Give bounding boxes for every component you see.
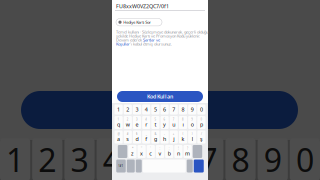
staticText: 9 [264, 138, 282, 180]
staticText: 6 [164, 118, 166, 121]
staticText: 3 [135, 106, 138, 113]
staticText: d [135, 135, 138, 143]
staticText: 0 [200, 118, 202, 121]
staticText: h [163, 135, 166, 143]
staticText: n [177, 150, 180, 157]
staticText: 1 [117, 106, 120, 113]
staticText: 8 [181, 106, 184, 113]
staticText: 8 [231, 138, 249, 180]
staticText: 6 [167, 138, 185, 180]
staticText: c [149, 150, 152, 157]
staticText: * [132, 147, 133, 150]
staticText: 1 [118, 118, 120, 121]
staticText: 3 [136, 118, 138, 121]
staticText: x [140, 150, 143, 157]
staticText: Devam ederek [116, 37, 143, 43]
staticText: - [164, 132, 165, 136]
staticText: 5 [135, 138, 153, 180]
staticText: 7 [173, 118, 175, 121]
staticText: b [168, 150, 171, 157]
staticText: f [145, 135, 147, 143]
staticText: 1 [6, 138, 24, 180]
staticText: o [191, 121, 194, 128]
staticText: m [185, 150, 190, 157]
staticText: ' [150, 147, 151, 150]
staticText: y [163, 121, 166, 128]
staticText: 9 [191, 118, 193, 121]
staticText: u [172, 121, 175, 128]
staticText: Şartlar ve [143, 37, 160, 43]
staticText: e [135, 121, 138, 128]
staticText: ı [182, 121, 183, 128]
staticText: a [117, 135, 120, 143]
staticText: 7 [172, 106, 175, 113]
staticText: şekilde Hediye Kartı ve Promosyon Kodu y… [116, 33, 200, 39]
button[interactable]: Hediye Kartı Sor [116, 18, 162, 26]
staticText: 2 [126, 106, 129, 113]
staticText: ? [187, 147, 188, 150]
staticText: 4 [145, 118, 147, 121]
staticText: k [181, 135, 184, 143]
staticText: FU8xxW0VZ2QC7/0f1 [116, 3, 169, 10]
staticText: ( [182, 132, 183, 136]
staticText: Temel kullanı · Sözleşmeye dokunarak, ge… [116, 29, 208, 35]
staticText: 5 [154, 106, 157, 113]
staticText: Koşullar [116, 41, 130, 47]
staticText: / [201, 132, 202, 136]
staticText: ) [192, 132, 193, 136]
staticText: v [158, 150, 161, 157]
staticText: Kod Kullan [147, 93, 173, 100]
staticText: 2 [38, 138, 56, 180]
staticText: s [126, 135, 129, 143]
staticText: ! [178, 147, 179, 150]
staticText: + [173, 132, 175, 136]
staticText: 6 [163, 106, 166, 113]
staticText: _ [146, 132, 147, 136]
staticText: w [126, 121, 130, 128]
staticText: 0 [296, 138, 314, 180]
staticText: r [145, 121, 147, 128]
staticText: t [154, 121, 156, 128]
staticText: 'ı kabul etmiş olursunuz. [130, 41, 172, 47]
staticText: 0 [200, 106, 203, 113]
staticText: @ [118, 132, 120, 136]
staticText: j [173, 135, 174, 143]
staticText: z [131, 150, 134, 157]
staticText: g [154, 135, 157, 143]
staticText: # [127, 132, 129, 136]
staticText: 4 [103, 138, 121, 180]
staticText: !#1 [118, 164, 123, 168]
button[interactable]: Kod Kullan [117, 91, 203, 102]
staticText: 3 [70, 138, 88, 180]
staticText: l [192, 135, 193, 143]
staticText: 5 [154, 118, 156, 121]
staticText: & [154, 132, 156, 136]
staticText: 2 [127, 118, 129, 121]
staticText: 8 [182, 118, 184, 121]
staticText: 7 [199, 138, 217, 180]
staticText: q [117, 121, 120, 128]
staticText: ; [169, 147, 170, 150]
staticText: 9 [191, 106, 194, 113]
staticText: " [141, 147, 142, 150]
staticText: p [200, 121, 203, 128]
staticText: ş [200, 135, 203, 143]
staticText: ₺ [136, 132, 138, 136]
staticText: 4 [145, 106, 148, 113]
staticText: Hediye Kartı Sor [123, 19, 151, 25]
